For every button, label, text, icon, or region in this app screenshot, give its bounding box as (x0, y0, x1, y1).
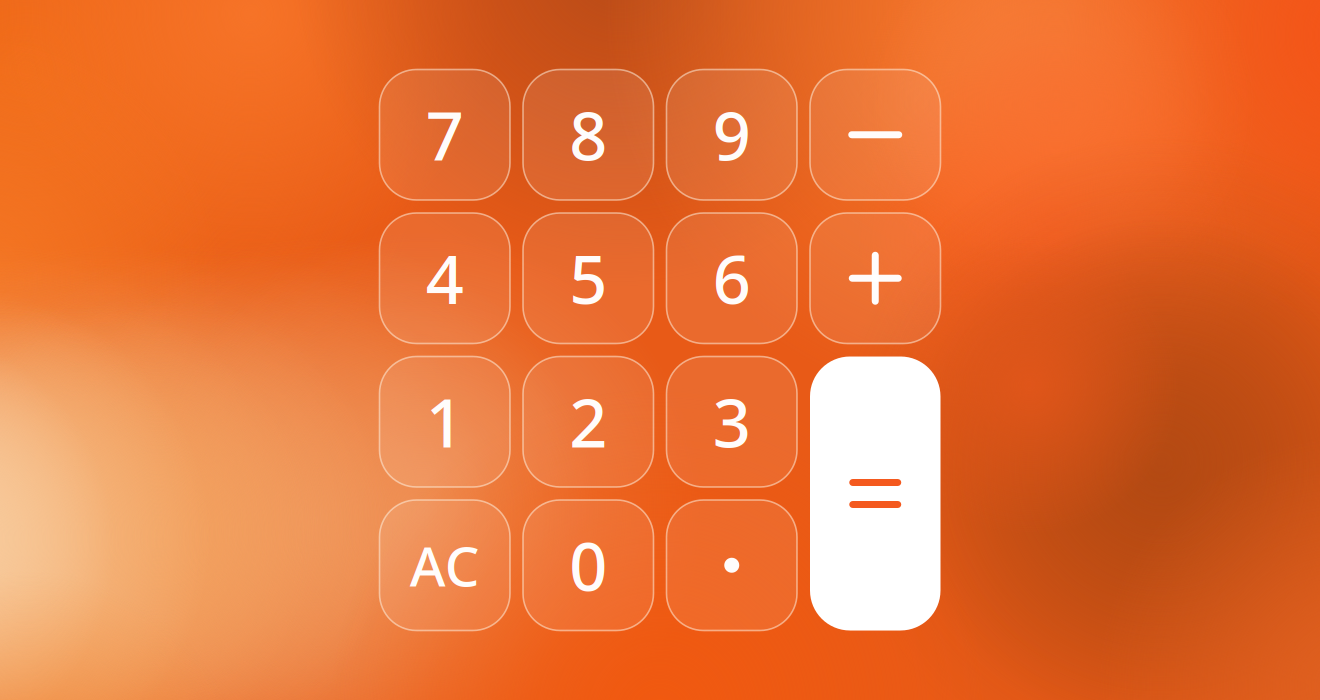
staticText: 5 (569, 234, 607, 322)
staticText: 7 (426, 90, 464, 179)
button[interactable]: AC (379, 500, 510, 630)
staticText: AC (410, 529, 480, 602)
button[interactable]: 4 (379, 213, 510, 343)
button[interactable]: Minus (810, 69, 940, 200)
staticText: 8 (569, 90, 607, 179)
button[interactable]: Equals (810, 356, 940, 630)
staticText: 0 (569, 521, 607, 609)
button[interactable]: 5 (523, 213, 653, 343)
staticText: 6 (713, 234, 751, 322)
button[interactable]: Plus (810, 213, 940, 343)
staticText: 4 (426, 234, 464, 322)
button[interactable]: 3 (666, 356, 797, 487)
staticText: 9 (713, 90, 751, 179)
button[interactable]: 7 (379, 69, 510, 200)
button[interactable]: 8 (523, 69, 653, 200)
button[interactable]: 1 (379, 356, 510, 487)
staticText: 3 (713, 377, 751, 466)
staticText: 1 (426, 377, 464, 466)
button[interactable]: 9 (666, 69, 797, 200)
button[interactable]: Decimal point (666, 500, 797, 630)
staticText: 2 (569, 377, 607, 466)
button[interactable]: 2 (523, 356, 653, 487)
button[interactable]: 0 (523, 500, 653, 630)
button[interactable]: 6 (666, 213, 797, 343)
